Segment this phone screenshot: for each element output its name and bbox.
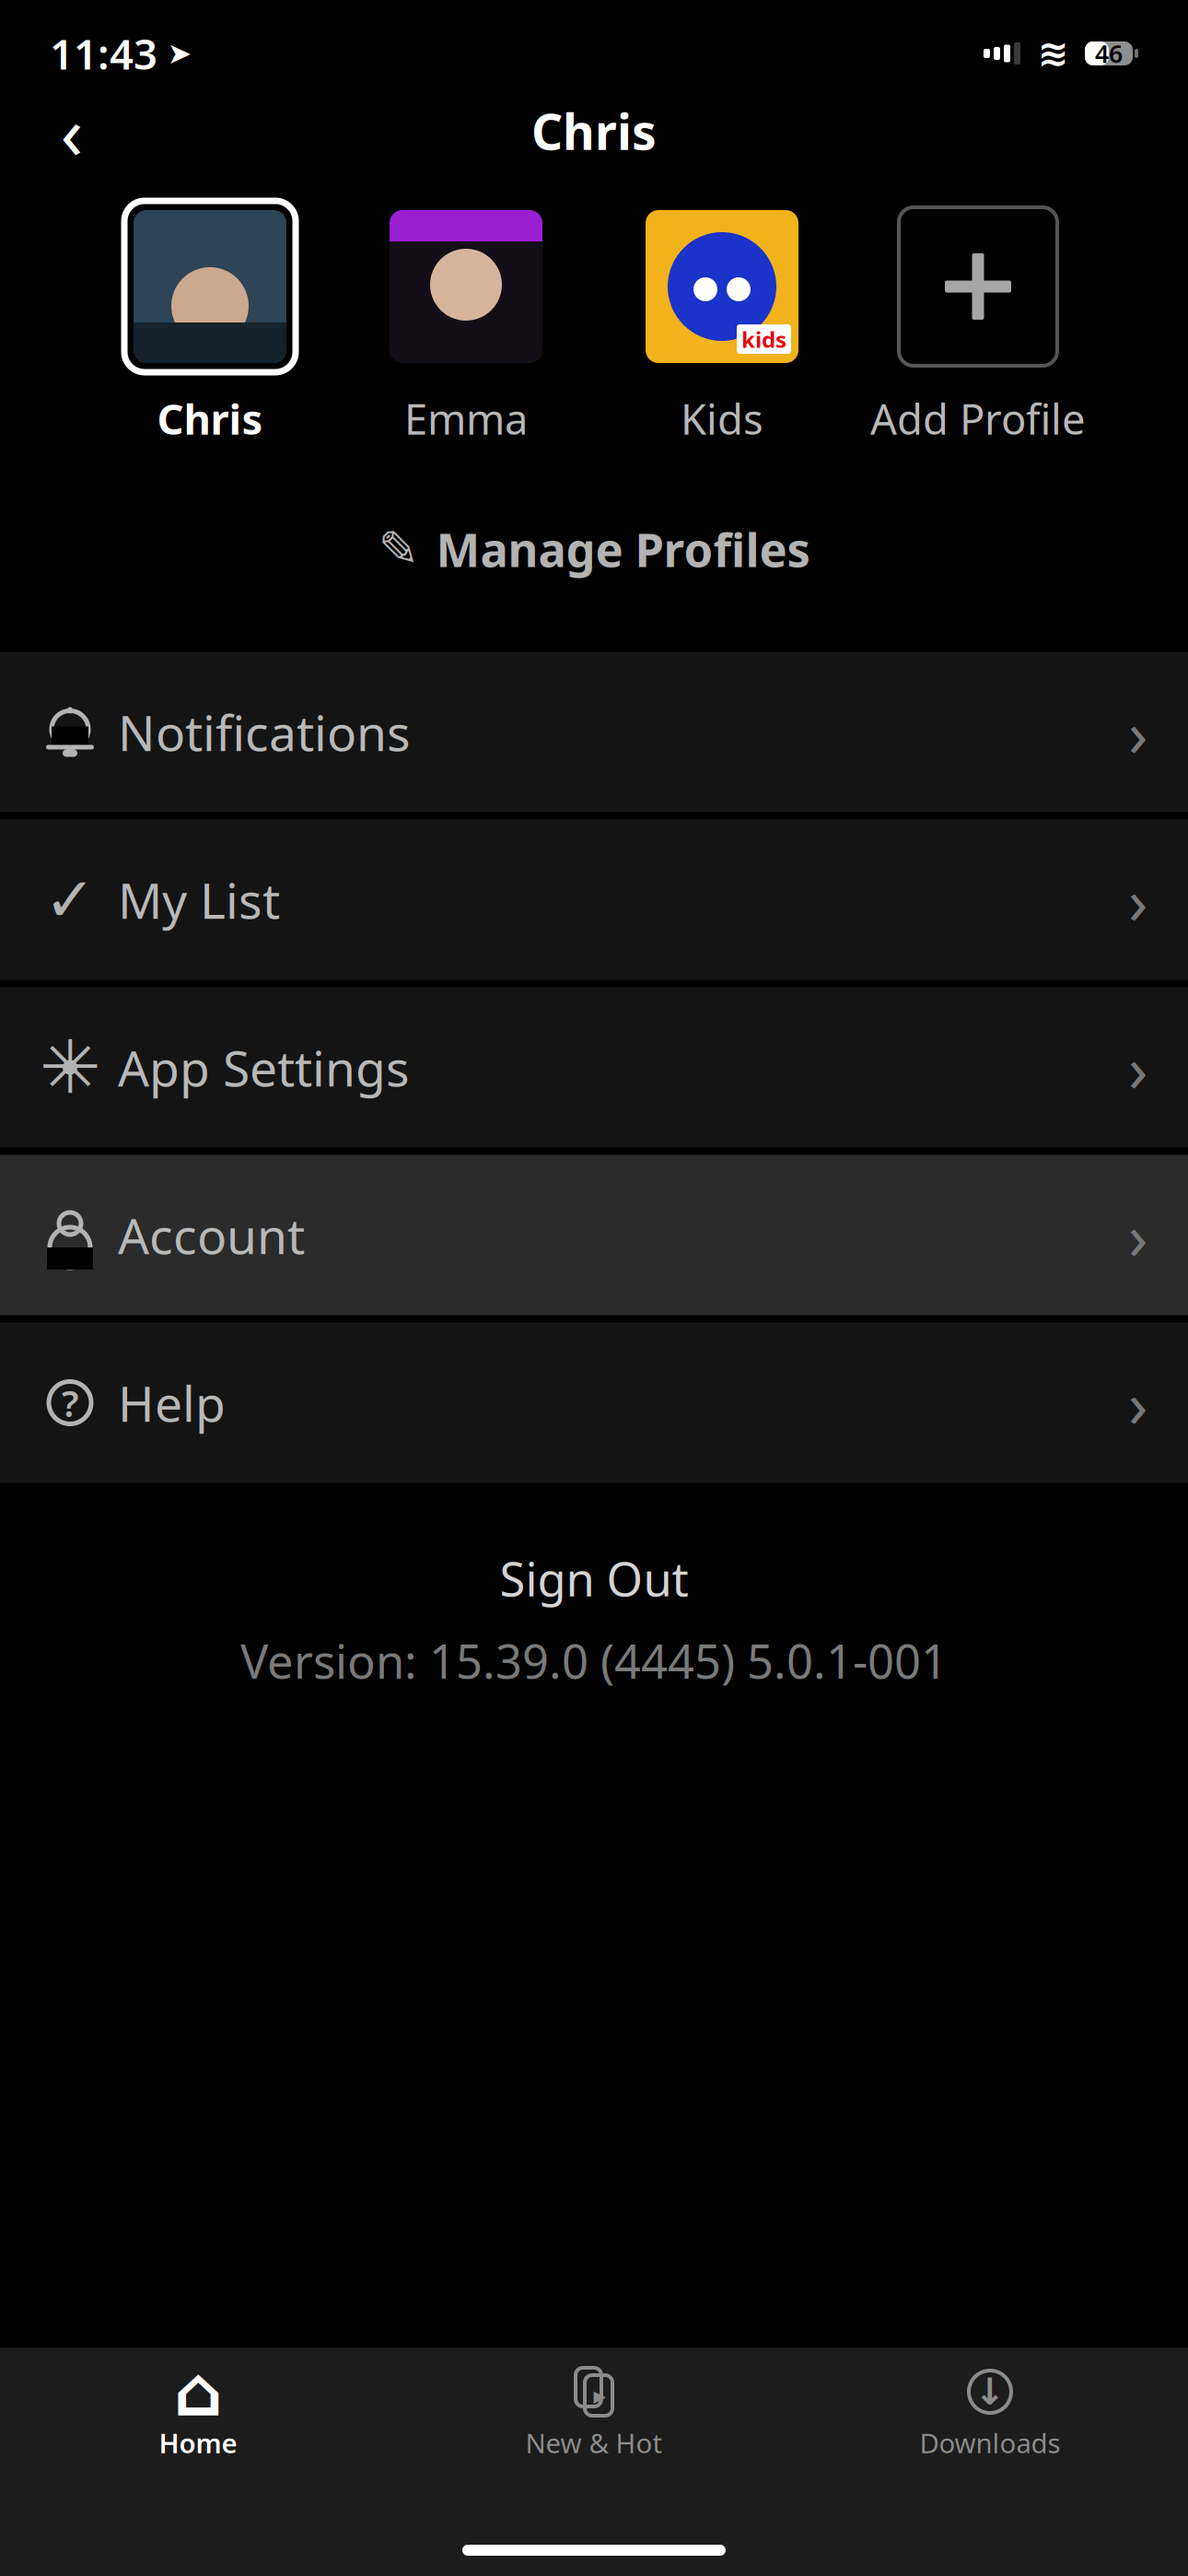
staticText: ≋ [1038,33,1069,74]
staticText: Manage Profiles [436,518,810,580]
staticText: ➤ [167,37,192,70]
staticText: Sign Out [500,1547,688,1609]
button[interactable]: kids [594,201,850,446]
staticText: My List [118,867,280,932]
button[interactable]: Chris [82,201,338,446]
button[interactable]: ? [0,1323,1188,1483]
staticText: › [1128,690,1147,774]
button[interactable]: ✓ [0,820,1188,980]
staticText: ? [62,1378,78,1427]
button[interactable]: Notifications [0,652,1188,812]
staticText: › [1128,1025,1147,1110]
button[interactable]: ✎ [341,494,847,604]
staticText: 11:43 [50,26,157,81]
staticText: Downloads [920,2425,1060,2461]
staticText: Chris [531,98,657,163]
staticText: Help [118,1370,226,1435]
button[interactable]: Back [35,94,109,168]
staticText: New & Hot [525,2425,663,2461]
staticText: Account [118,1202,305,1268]
button[interactable]: ✳ [0,987,1188,1147]
staticText: kids [741,324,786,354]
button[interactable]: Add Profile [850,201,1106,446]
staticText: ✎ [378,521,419,577]
button[interactable]: Account [0,1155,1188,1315]
staticText: ‹ [60,82,83,180]
staticText: Notifications [118,699,411,765]
staticText: ✓ [44,865,96,935]
staticText: Home [159,2425,237,2461]
staticText: › [1128,1193,1147,1277]
staticText: App Settings [118,1035,410,1100]
staticText: Emma [404,391,528,446]
button[interactable]: Emma [338,201,594,446]
staticText: › [1128,1360,1147,1445]
staticText: Chris [157,391,263,446]
staticText: 46 [1095,37,1123,70]
staticText: ✳ [39,1026,101,1109]
button[interactable]: Sign Out [463,1540,725,1617]
staticText: › [1128,857,1147,942]
staticText: ↓ [974,2371,1006,2413]
staticText: Version: 15.39.0 (4445) 5.0.1-001 [240,1630,948,1692]
staticText: ⌂ [174,2353,222,2431]
staticText: Kids [681,391,763,446]
staticText: ▸ [594,2382,606,2409]
staticText: Add Profile [870,391,1086,446]
button[interactable]: ▸ [396,2348,792,2461]
button[interactable]: ⌂ [0,2348,396,2461]
button[interactable]: ↓ [792,2348,1188,2461]
